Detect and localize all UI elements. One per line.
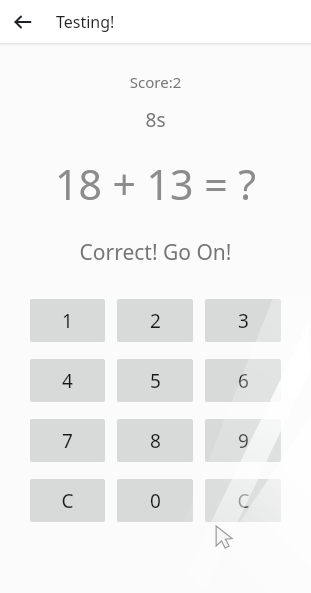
button[interactable]: 6 <box>205 359 281 402</box>
button[interactable]: 7 <box>30 419 105 462</box>
button[interactable]: 1 <box>30 299 105 342</box>
button[interactable]: 5 <box>117 359 193 402</box>
staticText: C <box>61 488 74 514</box>
button[interactable]: 9 <box>205 419 281 462</box>
staticText: 3 <box>238 308 249 334</box>
staticText: 8 <box>150 428 161 454</box>
staticText: 0 <box>150 488 161 514</box>
staticText: C <box>237 488 250 514</box>
button[interactable]: 3 <box>205 299 281 342</box>
staticText: 9 <box>238 428 249 454</box>
staticText: 7 <box>62 428 73 454</box>
button[interactable]: C <box>205 479 281 522</box>
button[interactable]: 2 <box>117 299 193 342</box>
button[interactable]: Back <box>8 7 38 37</box>
staticText: 8s <box>0 107 311 133</box>
staticText: 4 <box>62 368 73 394</box>
staticText: Correct! Go On! <box>0 238 311 267</box>
staticText: 18 + 13 = ? <box>0 156 311 212</box>
button[interactable]: C <box>30 479 105 522</box>
staticText: Testing! <box>56 11 115 33</box>
button[interactable]: 8 <box>117 419 193 462</box>
staticText: 1 <box>62 308 73 334</box>
button[interactable]: 0 <box>117 479 193 522</box>
staticText: 5 <box>150 368 161 394</box>
button[interactable]: 4 <box>30 359 105 402</box>
staticText: Score:2 <box>0 72 311 92</box>
staticText: 6 <box>238 368 249 394</box>
staticText: 2 <box>150 308 161 334</box>
